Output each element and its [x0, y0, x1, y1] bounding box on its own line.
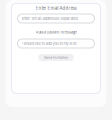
staticText: I would like to add you to my Box: [21, 41, 76, 46]
staticText: Enter Email Address: [35, 5, 76, 11]
staticText: Add a custom message: [35, 30, 76, 34]
button[interactable]: Send Invitation: [38, 54, 73, 61]
staticText: Send Invitation: [44, 55, 68, 60]
staticText: Enter email addresses separated: [21, 16, 77, 21]
